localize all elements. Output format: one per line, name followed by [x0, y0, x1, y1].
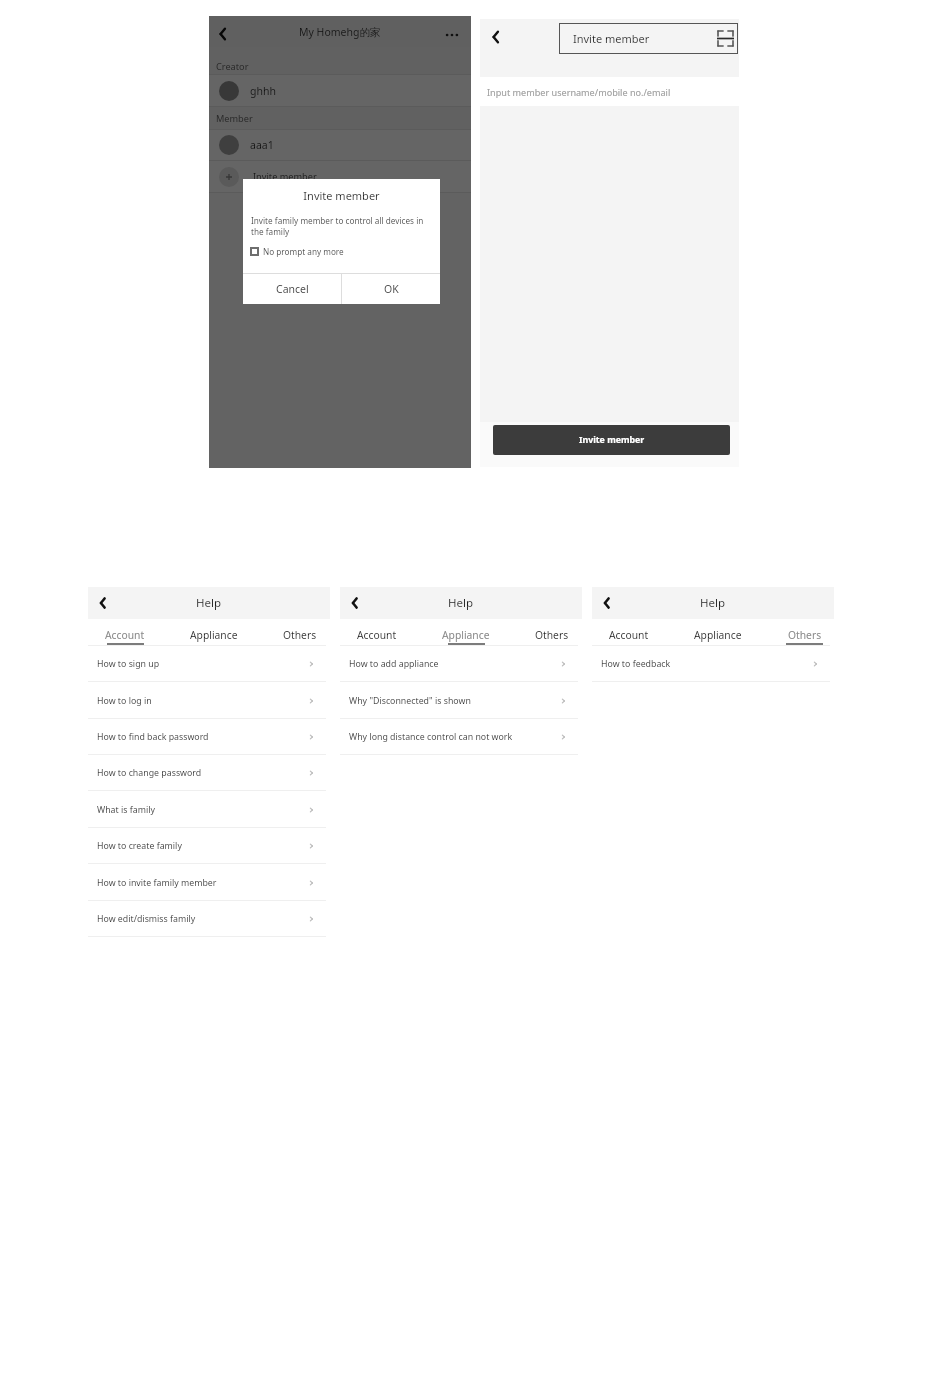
staticText: Others: [535, 628, 569, 642]
button[interactable]: How to log in: [88, 682, 330, 719]
staticText: How to invite family member: [97, 877, 217, 889]
staticText: How to find back password: [97, 731, 209, 743]
button[interactable]: What is family: [88, 791, 330, 828]
staticText: Others: [283, 628, 317, 642]
staticText: Cancel: [276, 282, 309, 296]
staticText: How edit/dismiss family: [97, 913, 196, 925]
button[interactable]: How to feedback: [592, 646, 834, 682]
staticText: Invite member: [253, 170, 317, 183]
staticText: No prompt any more: [263, 246, 344, 257]
staticText: Invite member: [579, 434, 645, 446]
staticText: Account: [357, 628, 397, 642]
staticText: Why "Disconnected" is shown: [349, 695, 471, 707]
staticText: What is family: [97, 804, 155, 816]
button[interactable]: OK: [342, 274, 440, 304]
button[interactable]: Appliance: [684, 619, 752, 645]
staticText: OK: [384, 282, 399, 296]
staticText: Why long distance control can not work: [349, 731, 513, 743]
button[interactable]: Invite member: [493, 425, 730, 455]
staticText: Member: [216, 112, 253, 125]
button[interactable]: How edit/dismiss family: [88, 901, 330, 937]
staticText: Help: [196, 595, 222, 611]
button[interactable]: Account: [595, 619, 663, 645]
button[interactable]: Others: [770, 619, 838, 645]
button[interactable]: Back: [485, 26, 507, 48]
button[interactable]: How to add appliance: [340, 646, 582, 682]
staticText: Help: [448, 595, 474, 611]
staticText: aaa1: [250, 138, 274, 152]
button[interactable]: Scan QR code: [716, 29, 734, 47]
button[interactable]: No prompt any more: [250, 246, 434, 257]
staticText: ghhh: [250, 84, 276, 98]
button[interactable]: Back: [597, 593, 617, 613]
button[interactable]: How to sign up: [88, 646, 330, 682]
staticText: How to sign up: [97, 658, 160, 670]
staticText: How to change password: [97, 767, 202, 779]
button[interactable]: Back: [213, 24, 233, 44]
staticText: Appliance: [694, 628, 742, 642]
button[interactable]: Cancel: [243, 274, 341, 304]
staticText: Invite member: [243, 188, 440, 203]
button[interactable]: How to change password: [88, 755, 330, 791]
button[interactable]: ghhh: [209, 74, 471, 107]
button[interactable]: Others: [518, 619, 586, 645]
button[interactable]: How to create family: [88, 828, 330, 864]
button[interactable]: Account: [343, 619, 411, 645]
button[interactable]: Why "Disconnected" is shown: [340, 682, 582, 719]
staticText: Account: [105, 628, 145, 642]
staticText: Appliance: [190, 628, 238, 642]
staticText: My Homehg的家: [299, 25, 381, 39]
staticText: Appliance: [442, 628, 490, 642]
button[interactable]: Others: [266, 619, 334, 645]
button[interactable]: aaa1: [209, 129, 471, 161]
staticText: Account: [609, 628, 649, 642]
staticText: How to log in: [97, 695, 152, 707]
staticText: Others: [788, 628, 822, 642]
button[interactable]: Account: [91, 619, 159, 645]
button[interactable]: Why long distance control can not work: [340, 719, 582, 755]
button[interactable]: Input member username/mobile no./email: [487, 77, 739, 106]
button[interactable]: Invite member: [209, 161, 471, 192]
staticText: How to add appliance: [349, 658, 439, 670]
button[interactable]: How to invite family member: [88, 864, 330, 901]
button[interactable]: Back: [345, 593, 365, 613]
staticText: How to create family: [97, 840, 182, 852]
staticText: Invite member: [573, 31, 650, 46]
staticText: How to feedback: [601, 658, 671, 670]
staticText: Creator: [216, 60, 249, 73]
button[interactable]: Appliance: [180, 619, 248, 645]
button[interactable]: More options: [442, 25, 462, 45]
staticText: Invite family member to control all devi…: [251, 215, 434, 238]
staticText: Help: [700, 595, 726, 611]
button[interactable]: How to find back password: [88, 719, 330, 755]
staticText: Input member username/mobile no./email: [487, 86, 671, 98]
button[interactable]: Back: [93, 593, 113, 613]
button[interactable]: Appliance: [432, 619, 500, 645]
